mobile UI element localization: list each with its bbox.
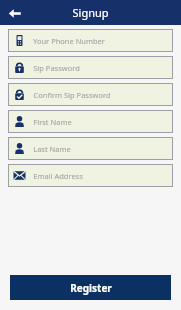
staticText: Register: [70, 281, 112, 295]
staticText: Confirm Sip Password: [33, 90, 111, 100]
staticText: Your Phone Number: [33, 36, 105, 46]
button[interactable]: Email Address: [8, 164, 173, 187]
staticText: Email Address: [33, 171, 83, 181]
button[interactable]: Confirm Sip Password: [8, 83, 173, 106]
button[interactable]: Last Name: [8, 137, 173, 160]
button[interactable]: Register: [10, 275, 171, 300]
staticText: First Name: [33, 117, 72, 127]
staticText: Last Name: [33, 144, 71, 154]
button[interactable]: Back: [2, 1, 26, 25]
staticText: Sip Password: [33, 63, 80, 73]
staticText: Signup: [72, 5, 109, 20]
button[interactable]: Your Phone Number: [8, 29, 173, 52]
button[interactable]: First Name: [8, 110, 173, 133]
button[interactable]: Sip Password: [8, 56, 173, 79]
